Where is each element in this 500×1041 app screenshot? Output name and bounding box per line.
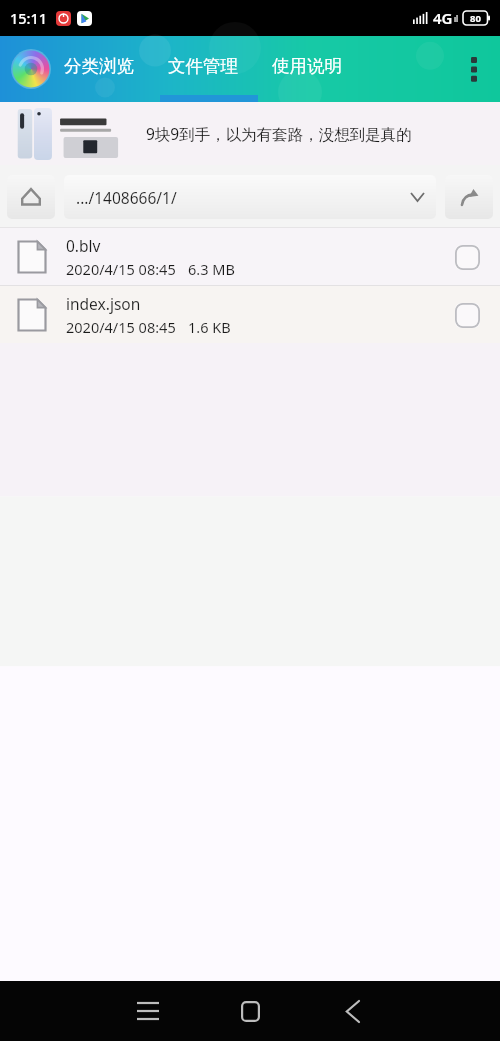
- staticText: 2020/4/15 08:45: [66, 317, 176, 337]
- button[interactable]: 9块9到手，以为有套路，没想到是真的: [0, 102, 500, 165]
- staticText: .../1408666/1/lua.mp4.bili2api.16: [76, 187, 243, 208]
- button[interactable]: index.json: [0, 286, 500, 343]
- button[interactable]: Go up: [445, 175, 493, 219]
- staticText: 0.blv: [66, 235, 101, 256]
- staticText: 15:11: [10, 8, 48, 28]
- staticText: 80: [470, 12, 481, 25]
- button[interactable]: 文件管理: [166, 49, 240, 83]
- staticText: 分类浏览: [64, 55, 134, 77]
- staticText: 4G: [433, 8, 453, 28]
- staticText: 使用说明: [272, 55, 342, 77]
- other: App logo: [10, 48, 52, 90]
- button[interactable]: Home: [7, 175, 55, 219]
- staticText: ıl: [454, 13, 459, 24]
- button[interactable]: Home: [212, 986, 288, 1036]
- staticText: 6.3 MB: [188, 259, 235, 279]
- staticText: 文件管理: [168, 55, 238, 77]
- staticText: 9块9到手，以为有套路，没想到是真的: [146, 123, 412, 144]
- staticText: index.json: [66, 293, 141, 314]
- button[interactable]: 0.blv: [0, 228, 500, 285]
- staticText: 1.6 KB: [188, 317, 231, 337]
- button[interactable]: Select index.json: [445, 293, 489, 337]
- button[interactable]: 分类浏览: [62, 49, 136, 83]
- button[interactable]: Back: [314, 986, 390, 1036]
- button[interactable]: More options: [454, 49, 494, 89]
- button[interactable]: Recent apps: [110, 986, 186, 1036]
- button[interactable]: .../1408666/1/lua.mp4.bili2api.16: [64, 175, 436, 219]
- button[interactable]: 使用说明: [270, 49, 344, 83]
- staticText: 2020/4/15 08:45: [66, 259, 176, 279]
- button[interactable]: Select 0.blv: [445, 235, 489, 279]
